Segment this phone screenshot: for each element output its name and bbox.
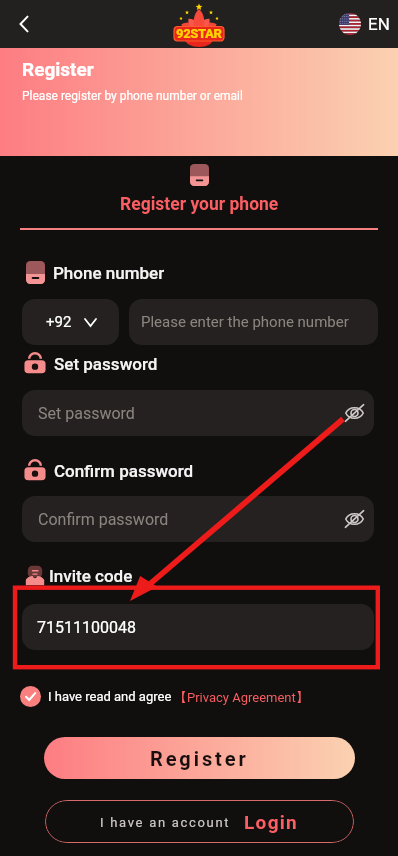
button[interactable]: 71511100048: [22, 604, 374, 650]
button[interactable]: Back: [6, 6, 42, 42]
staticText: Invite code: [49, 566, 133, 586]
staticText: 71511100048: [37, 618, 136, 637]
button[interactable]: Set password: [22, 390, 374, 436]
staticText: +92: [46, 313, 72, 331]
staticText: Confirm password: [54, 461, 194, 481]
staticText: Confirm password: [38, 510, 169, 529]
staticText: Set password: [38, 404, 135, 423]
staticText: Phone number: [53, 263, 165, 283]
button[interactable]: Show password: [340, 505, 368, 533]
staticText: I have read and agree: [48, 689, 172, 704]
button[interactable]: Please enter the phone number: [129, 299, 378, 345]
button[interactable]: +92: [22, 299, 119, 345]
button[interactable]: I have an account: [45, 800, 354, 843]
staticText: I have an account: [100, 815, 231, 830]
button[interactable]: 【Privacy Agreement】: [174, 689, 309, 705]
button[interactable]: Agree to terms: [20, 686, 41, 707]
staticText: Please enter the phone number: [141, 313, 349, 331]
button[interactable]: EN: [339, 13, 390, 35]
button[interactable]: Confirm password: [22, 496, 374, 542]
staticText: Set password: [54, 354, 158, 374]
button[interactable]: Register your phone: [0, 156, 398, 230]
staticText: Register: [150, 747, 249, 770]
staticText: EN: [368, 14, 390, 34]
button[interactable]: Register: [44, 737, 355, 779]
staticText: 92STAR: [176, 26, 222, 41]
button[interactable]: Show password: [340, 399, 368, 427]
staticText: Register: [22, 58, 94, 80]
staticText: Login: [244, 811, 299, 833]
staticText: Register your phone: [120, 194, 279, 215]
staticText: Please register by phone number or email: [22, 89, 243, 103]
